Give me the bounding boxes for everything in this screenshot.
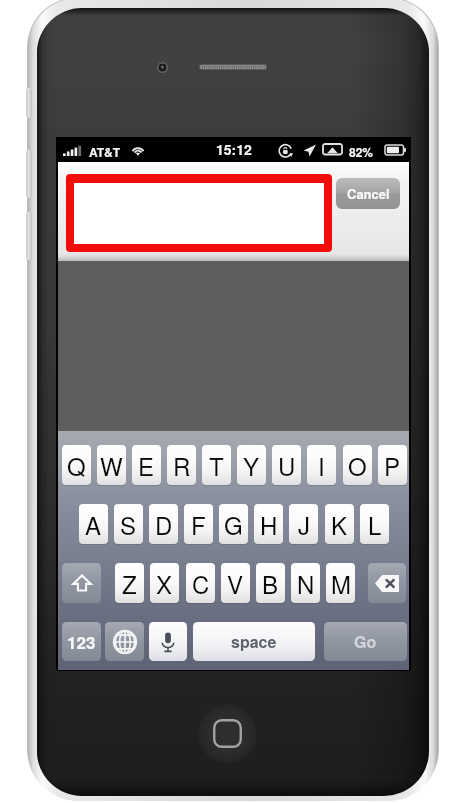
button[interactable]: Backspace — [368, 563, 406, 603]
button[interactable]: Go — [324, 622, 407, 661]
staticText: X — [156, 566, 173, 600]
button[interactable]: D — [149, 504, 178, 544]
button[interactable]: B — [256, 563, 285, 603]
staticText: P — [384, 448, 401, 482]
button[interactable]: Numbers — [62, 622, 101, 661]
button[interactable]: J — [289, 504, 318, 544]
staticText: Z — [122, 566, 137, 600]
staticText: 82% — [349, 143, 374, 160]
button[interactable]: E — [132, 445, 161, 485]
button[interactable]: K — [325, 504, 354, 544]
button[interactable]: H — [254, 504, 283, 544]
button[interactable]: G — [219, 504, 248, 544]
button[interactable]: O — [343, 445, 372, 485]
staticText: K — [331, 507, 348, 541]
staticText: C — [192, 566, 210, 600]
staticText: space — [231, 630, 277, 653]
button[interactable]: Y — [237, 445, 266, 485]
button[interactable]: V — [221, 563, 250, 603]
button[interactable]: R — [167, 445, 196, 485]
staticText: H — [260, 507, 278, 541]
staticText: O — [348, 448, 367, 482]
staticText: M — [331, 566, 351, 600]
button[interactable]: Cancel — [336, 178, 400, 209]
staticText: S — [120, 507, 137, 541]
button[interactable]: M — [326, 563, 355, 603]
staticText: 123 — [67, 630, 96, 654]
staticText: G — [224, 507, 243, 541]
button[interactable]: Search field — [66, 174, 332, 252]
staticText: T — [209, 448, 224, 482]
button[interactable]: P — [378, 445, 407, 485]
staticText: D — [155, 507, 173, 541]
staticText: R — [173, 448, 191, 482]
staticText: Y — [243, 448, 260, 482]
staticText: Q — [67, 448, 86, 482]
button[interactable]: F — [184, 504, 213, 544]
staticText: A — [85, 507, 102, 541]
button[interactable]: Dictation — [149, 622, 187, 661]
staticText: F — [191, 507, 206, 541]
staticText: E — [138, 448, 155, 482]
staticText: V — [227, 566, 244, 600]
button[interactable]: I — [307, 445, 336, 485]
staticText: Go — [354, 630, 377, 653]
button[interactable]: S — [114, 504, 143, 544]
staticText: N — [297, 566, 315, 600]
button[interactable]: Shift — [62, 563, 101, 603]
button[interactable]: Home — [198, 704, 257, 763]
button[interactable]: N — [291, 563, 320, 603]
staticText: Cancel — [347, 184, 390, 203]
button[interactable]: A — [79, 504, 108, 544]
staticText: L — [368, 507, 382, 541]
button[interactable]: X — [150, 563, 179, 603]
staticText: W — [100, 448, 123, 482]
staticText: J — [298, 507, 310, 541]
button[interactable]: Q — [62, 445, 91, 485]
staticText: 15:12 — [216, 139, 252, 159]
button[interactable]: Change language — [105, 622, 144, 661]
button[interactable]: C — [186, 563, 215, 603]
button[interactable]: L — [360, 504, 389, 544]
button[interactable]: T — [202, 445, 231, 485]
button[interactable]: Z — [115, 563, 144, 603]
staticText: I — [318, 448, 325, 482]
staticText: B — [262, 566, 279, 600]
button[interactable]: U — [272, 445, 301, 485]
staticText: U — [278, 448, 296, 482]
button[interactable]: space — [193, 622, 315, 661]
button[interactable]: W — [97, 445, 126, 485]
staticText: AT&T — [89, 143, 121, 160]
